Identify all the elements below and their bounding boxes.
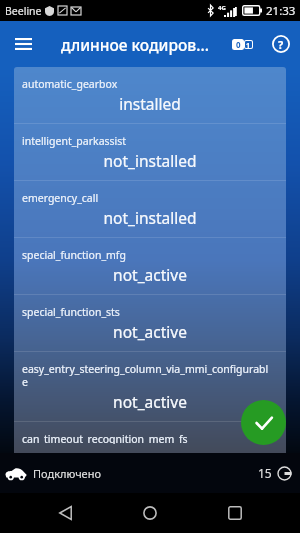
staticText: special_function_mfg [22,248,126,262]
staticText: 21:33 [266,3,296,19]
button[interactable]: emergency_call [14,181,286,237]
button[interactable]: Help [262,25,300,63]
button[interactable]: special_function_mfg [14,238,286,294]
button[interactable]: Apply [241,400,286,445]
staticText: 4G [218,4,226,12]
staticText: ? [278,37,284,52]
staticText: Beeline [5,4,42,18]
button[interactable]: special_function_sts [14,295,286,351]
button[interactable]: can_timeout_recognition_mem_fs [14,422,286,453]
staticText: not_active [22,264,278,285]
staticText: special_function_sts [22,305,120,319]
staticText: not_active [22,391,278,412]
button[interactable]: Home [130,493,170,533]
staticText: installed [22,93,278,114]
button[interactable]: easy_entry_steering_column_via_mmi_confi… [14,352,286,421]
staticText: not_active [22,321,278,342]
button[interactable]: intelligent_parkassist [14,124,286,180]
staticText: 0 [236,39,241,50]
button[interactable]: Back [45,493,85,533]
button[interactable]: Binary coding [222,24,262,64]
staticText: automatic_gearbox [22,77,118,91]
staticText: 1 [246,41,251,48]
staticText: 15 [258,465,272,481]
staticText: easy_entry_steering_column_via_mmi_confi… [22,362,269,389]
staticText: emergency_call [22,191,99,205]
button[interactable]: automatic_gearbox [14,67,286,123]
staticText: not_installed [22,150,278,171]
staticText: can_timeout_recognition_mem_fs [22,432,188,444]
button[interactable]: Recent apps [215,493,255,533]
staticText: длинное кодиров... [61,34,222,55]
staticText: not_installed [22,207,278,228]
staticText: Подключено [33,466,101,481]
button[interactable]: Open navigation menu [0,21,46,67]
staticText: intelligent_parkassist [22,134,127,148]
